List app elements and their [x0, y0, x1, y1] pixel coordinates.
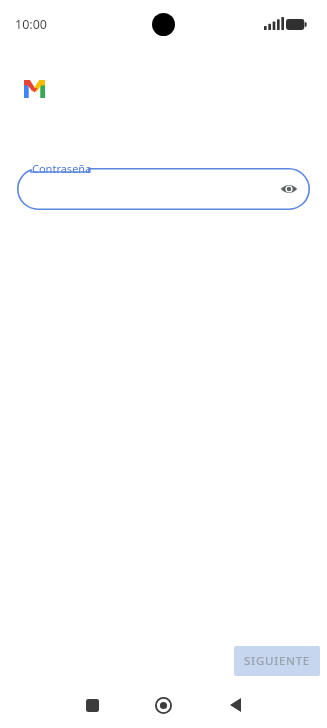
button[interactable]: Mostrar contraseña [277, 177, 301, 201]
staticText: SIGUIENTE [244, 653, 310, 669]
button[interactable]: Inicio [139, 681, 187, 728]
button[interactable]: Recientes [68, 681, 116, 728]
staticText: 10:00 [15, 16, 47, 33]
button[interactable]: Atrás [211, 681, 259, 728]
button[interactable]: SIGUIENTE [234, 646, 320, 676]
button[interactable] [17, 168, 310, 210]
staticText: Contraseña [32, 161, 92, 176]
other: Gmail [24, 80, 45, 98]
